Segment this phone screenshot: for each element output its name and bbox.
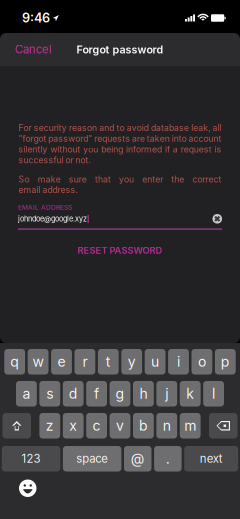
button[interactable]: n [156,413,177,438]
button[interactable]: j [156,381,177,406]
staticText: For [18,123,31,133]
staticText: to [116,123,124,133]
staticText: the [171,174,184,184]
button[interactable]: Emoji keyboard [14,474,41,502]
staticText: space [76,452,108,466]
staticText: account [188,133,221,144]
staticText: johndoe@google.xyz [18,214,87,223]
button[interactable]: i [168,349,189,374]
staticText: r [82,353,87,370]
button[interactable]: . [154,446,182,471]
staticText: EMAIL ADDRESS [18,203,72,211]
staticText: a [22,385,30,402]
staticText: @ [131,450,145,467]
button[interactable]: l [203,381,224,406]
button[interactable]: t [98,349,119,374]
button[interactable]: w [28,349,48,374]
button[interactable]: b [133,413,154,438]
staticText: RESET PASSWORD [77,245,162,256]
staticText: 123 [21,452,40,466]
staticText: h [139,385,147,402]
staticText: without [50,144,80,155]
staticText: taken [147,133,170,144]
button[interactable]: space [63,446,121,471]
staticText: a [173,144,178,155]
staticText: if [165,144,170,155]
staticText: q [10,353,19,370]
button[interactable]: Delete [209,413,237,438]
button[interactable]: m [180,413,201,438]
staticText: g [115,385,124,402]
staticText: is [214,144,221,155]
button[interactable]: Cancel [8,34,59,65]
staticText: correct [192,174,221,184]
button[interactable]: a [16,381,37,406]
staticText: database [151,123,189,133]
button[interactable]: c [86,413,107,438]
staticText: w [33,353,44,370]
staticText: s [46,385,53,402]
staticText: email address. [18,185,77,195]
staticText: t [106,353,111,370]
staticText: requests [94,133,130,144]
staticText: password" [48,133,92,144]
button[interactable]: d [63,381,84,406]
button[interactable]: RESET PASSWORD [65,241,174,260]
staticText: u [151,353,159,370]
staticText: m [184,417,196,434]
button[interactable]: Shift [2,413,31,438]
button[interactable]: x [63,413,84,438]
staticText: Forgot password [76,43,163,56]
button[interactable]: z [39,413,60,438]
staticText: o [198,353,206,370]
staticText: security [34,123,67,133]
staticText: b [139,417,148,434]
button[interactable]: next [184,446,238,471]
staticText: you [83,144,98,155]
button[interactable]: p [215,349,236,374]
button[interactable]: q [4,349,25,374]
button[interactable]: s [39,381,60,406]
button[interactable]: u [145,349,165,374]
staticText: c [93,417,101,434]
staticText: f [94,385,99,402]
button[interactable]: h [133,381,154,406]
staticText: "forgot [18,133,46,144]
staticText: k [186,385,194,402]
staticText: next [200,452,223,466]
staticText: j [165,385,168,402]
staticText: all [212,123,221,133]
button[interactable]: v [110,413,130,438]
button[interactable]: o [191,349,212,374]
staticText: request [181,144,212,155]
staticText: So [18,174,29,184]
staticText: avoid [127,123,149,133]
staticText: are [132,133,145,144]
staticText: y [128,353,136,370]
button[interactable]: y [121,349,142,374]
staticText: p [221,353,230,370]
staticText: reason [69,123,97,133]
staticText: . [166,450,170,467]
staticText: make [38,174,61,184]
button[interactable]: @ [124,446,151,471]
staticText: into [172,133,187,144]
staticText: e [57,353,65,370]
staticText: l [212,385,215,402]
button[interactable]: 123 [2,446,60,471]
staticText: successful or not. [18,155,90,165]
staticText: x [69,417,77,434]
staticText: sure [69,174,87,184]
button[interactable]: f [86,381,107,406]
button[interactable]: r [74,349,95,374]
staticText: silently [18,144,47,155]
button[interactable]: Clear text [212,214,222,223]
button[interactable]: k [180,381,201,406]
button[interactable]: e [51,349,72,374]
button[interactable]: g [110,381,130,406]
staticText: and [99,123,114,133]
staticText: n [163,417,171,434]
staticText: enter [142,174,163,184]
staticText: d [69,385,78,402]
staticText: v [116,417,124,434]
